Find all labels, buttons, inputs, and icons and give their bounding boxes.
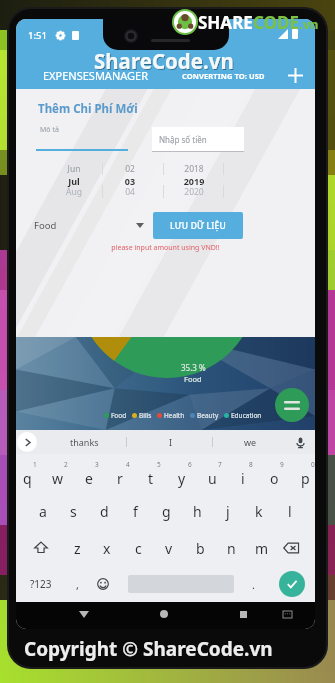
button[interactable]: Enter bbox=[279, 571, 305, 597]
staticText: 1:51 bbox=[28, 29, 47, 42]
staticText: p bbox=[301, 469, 310, 488]
staticText: m bbox=[255, 539, 269, 558]
staticText: 6 bbox=[188, 460, 192, 469]
staticText: k bbox=[255, 502, 263, 521]
button[interactable]: Home bbox=[153, 603, 175, 625]
staticText: n bbox=[227, 539, 236, 558]
staticText: 1 bbox=[33, 460, 37, 469]
staticText: Food bbox=[184, 374, 202, 384]
staticText: I bbox=[169, 436, 173, 448]
staticText: r bbox=[117, 469, 123, 488]
staticText: o bbox=[270, 469, 279, 488]
staticText: j bbox=[226, 502, 230, 521]
button[interactable]: l bbox=[275, 494, 305, 528]
button[interactable]: , bbox=[64, 567, 90, 601]
button[interactable]: k bbox=[244, 494, 274, 528]
staticText: Food bbox=[111, 411, 127, 420]
button[interactable]: j bbox=[213, 494, 243, 528]
staticText: ShareCode.vn bbox=[94, 47, 234, 75]
button[interactable]: r bbox=[105, 459, 135, 493]
button[interactable]: I bbox=[141, 430, 201, 454]
button[interactable]: Shift bbox=[24, 531, 58, 565]
button[interactable]: Voice input bbox=[288, 430, 312, 454]
button[interactable]: s bbox=[58, 494, 88, 528]
button[interactable]: LƯU DỮ LIỆU bbox=[153, 212, 243, 239]
button[interactable]: o bbox=[259, 459, 289, 493]
staticText: b bbox=[196, 539, 205, 558]
button[interactable]: f bbox=[120, 494, 150, 528]
staticText: a bbox=[39, 502, 47, 521]
button[interactable]: Education bbox=[224, 411, 262, 420]
button[interactable]: Beauty bbox=[190, 411, 219, 420]
button[interactable]: Switch keyboard bbox=[276, 603, 298, 625]
staticText: Health bbox=[164, 411, 185, 420]
staticText: f bbox=[133, 502, 138, 521]
staticText: w bbox=[52, 469, 64, 488]
button[interactable]: Emoji bbox=[90, 567, 116, 601]
button[interactable]: u bbox=[197, 459, 227, 493]
staticText: 2018 bbox=[172, 163, 216, 175]
button[interactable]: i bbox=[228, 459, 258, 493]
button[interactable]: . bbox=[240, 567, 266, 601]
staticText: l bbox=[288, 502, 292, 521]
staticText: 02 bbox=[108, 163, 152, 175]
staticText: d bbox=[100, 502, 109, 521]
button[interactable]: Backspace bbox=[273, 531, 309, 565]
button[interactable]: a bbox=[28, 494, 58, 528]
button[interactable]: thanks bbox=[54, 430, 114, 454]
button[interactable]: w bbox=[43, 459, 73, 493]
staticText: Nhập số tiền bbox=[159, 134, 207, 145]
button[interactable]: Add expense bbox=[283, 63, 307, 87]
staticText: . bbox=[252, 577, 255, 592]
staticText: z bbox=[74, 539, 81, 558]
button[interactable]: v bbox=[154, 531, 184, 565]
button[interactable]: q bbox=[16, 459, 42, 493]
button[interactable]: b bbox=[185, 531, 215, 565]
button[interactable]: n bbox=[216, 531, 246, 565]
button[interactable]: ?123 bbox=[21, 567, 61, 601]
button[interactable]: Food bbox=[104, 411, 127, 420]
button[interactable]: Jun bbox=[52, 160, 96, 202]
button[interactable]: y bbox=[167, 459, 197, 493]
button[interactable]: 2018 bbox=[172, 160, 216, 202]
staticText: 5 bbox=[157, 460, 161, 469]
button[interactable]: t bbox=[136, 459, 166, 493]
staticText: we bbox=[244, 436, 257, 448]
button[interactable]: z bbox=[62, 531, 92, 565]
button[interactable]: Health bbox=[157, 411, 185, 420]
button[interactable]: Food bbox=[34, 215, 144, 235]
staticText: Beauty bbox=[197, 411, 219, 420]
button[interactable]: d bbox=[89, 494, 119, 528]
staticText: 03 bbox=[108, 175, 152, 187]
staticText: u bbox=[208, 469, 217, 488]
button[interactable]: Back bbox=[73, 603, 95, 625]
staticText: SHARE bbox=[198, 11, 253, 34]
staticText: y bbox=[178, 469, 186, 488]
button[interactable]: c bbox=[123, 531, 153, 565]
button[interactable]: Nhập số tiền bbox=[152, 127, 244, 151]
button[interactable]: we bbox=[220, 430, 280, 454]
button[interactable]: g bbox=[151, 494, 181, 528]
staticText: EXPENSESMANAGER bbox=[43, 68, 149, 83]
button[interactable]: 02 bbox=[108, 160, 152, 202]
staticText: ShareCode.vn bbox=[95, 48, 235, 76]
staticText: .vn bbox=[299, 15, 319, 33]
staticText: 7 bbox=[218, 460, 222, 469]
staticText: Food bbox=[34, 219, 57, 232]
button[interactable]: e bbox=[74, 459, 104, 493]
button[interactable]: p bbox=[290, 459, 315, 493]
staticText: Jul bbox=[52, 175, 96, 187]
staticText: q bbox=[23, 469, 32, 488]
button[interactable]: Bills bbox=[132, 411, 152, 420]
button[interactable]: Expand suggestions bbox=[17, 432, 37, 452]
staticText: Mô tả bbox=[40, 125, 59, 135]
button[interactable]: Menu bbox=[275, 388, 309, 422]
staticText: c bbox=[135, 539, 142, 558]
button[interactable]: Recent apps bbox=[232, 603, 254, 625]
staticText: e bbox=[85, 469, 93, 488]
button[interactable]: m bbox=[247, 531, 277, 565]
button[interactable]: h bbox=[182, 494, 212, 528]
button[interactable]: x bbox=[92, 531, 122, 565]
staticText: i bbox=[241, 469, 245, 488]
